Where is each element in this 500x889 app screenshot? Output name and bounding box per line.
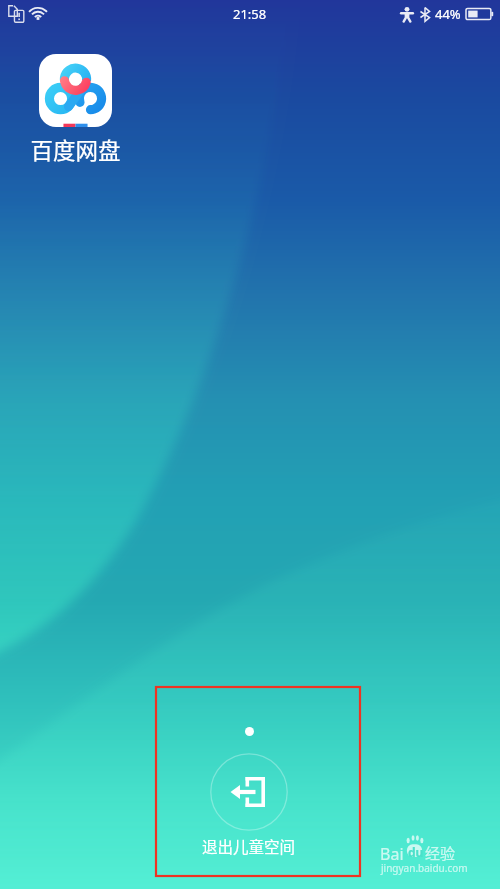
staticText: 21:58 (233, 5, 267, 23)
staticText: 经验 (425, 842, 456, 864)
staticText: 44% (435, 5, 461, 23)
button[interactable]: 百度网盘 (5, 54, 145, 166)
staticText: jingyan.baidu.com (381, 861, 468, 875)
staticText: 退出儿童空间 (202, 835, 296, 857)
staticText: du (408, 844, 424, 860)
staticText: Bai (380, 843, 404, 865)
staticText: 百度网盘 (30, 133, 121, 166)
button[interactable]: 退出儿童空间 (155, 686, 361, 877)
